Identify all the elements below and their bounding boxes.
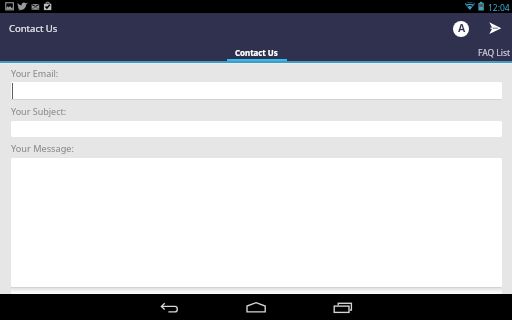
button[interactable]: Contact Us xyxy=(226,46,286,62)
staticText: 12:04 xyxy=(488,2,510,14)
staticText: FAQ List xyxy=(478,47,511,59)
staticText: A xyxy=(458,21,466,35)
staticText: Your Message: xyxy=(11,142,74,155)
button[interactable] xyxy=(11,82,502,99)
button[interactable]: Send xyxy=(483,16,507,40)
staticText: Contact Us xyxy=(235,48,278,59)
staticText: Your Subject: xyxy=(11,105,67,117)
button[interactable]: Back xyxy=(150,294,190,320)
staticText: Your Email: xyxy=(11,67,59,79)
button[interactable]: Home xyxy=(236,294,276,320)
button[interactable]: Recent apps xyxy=(322,294,362,320)
button[interactable]: About xyxy=(449,17,473,41)
staticText: Contact Us xyxy=(9,22,58,35)
button[interactable]: FAQ List xyxy=(474,46,512,62)
